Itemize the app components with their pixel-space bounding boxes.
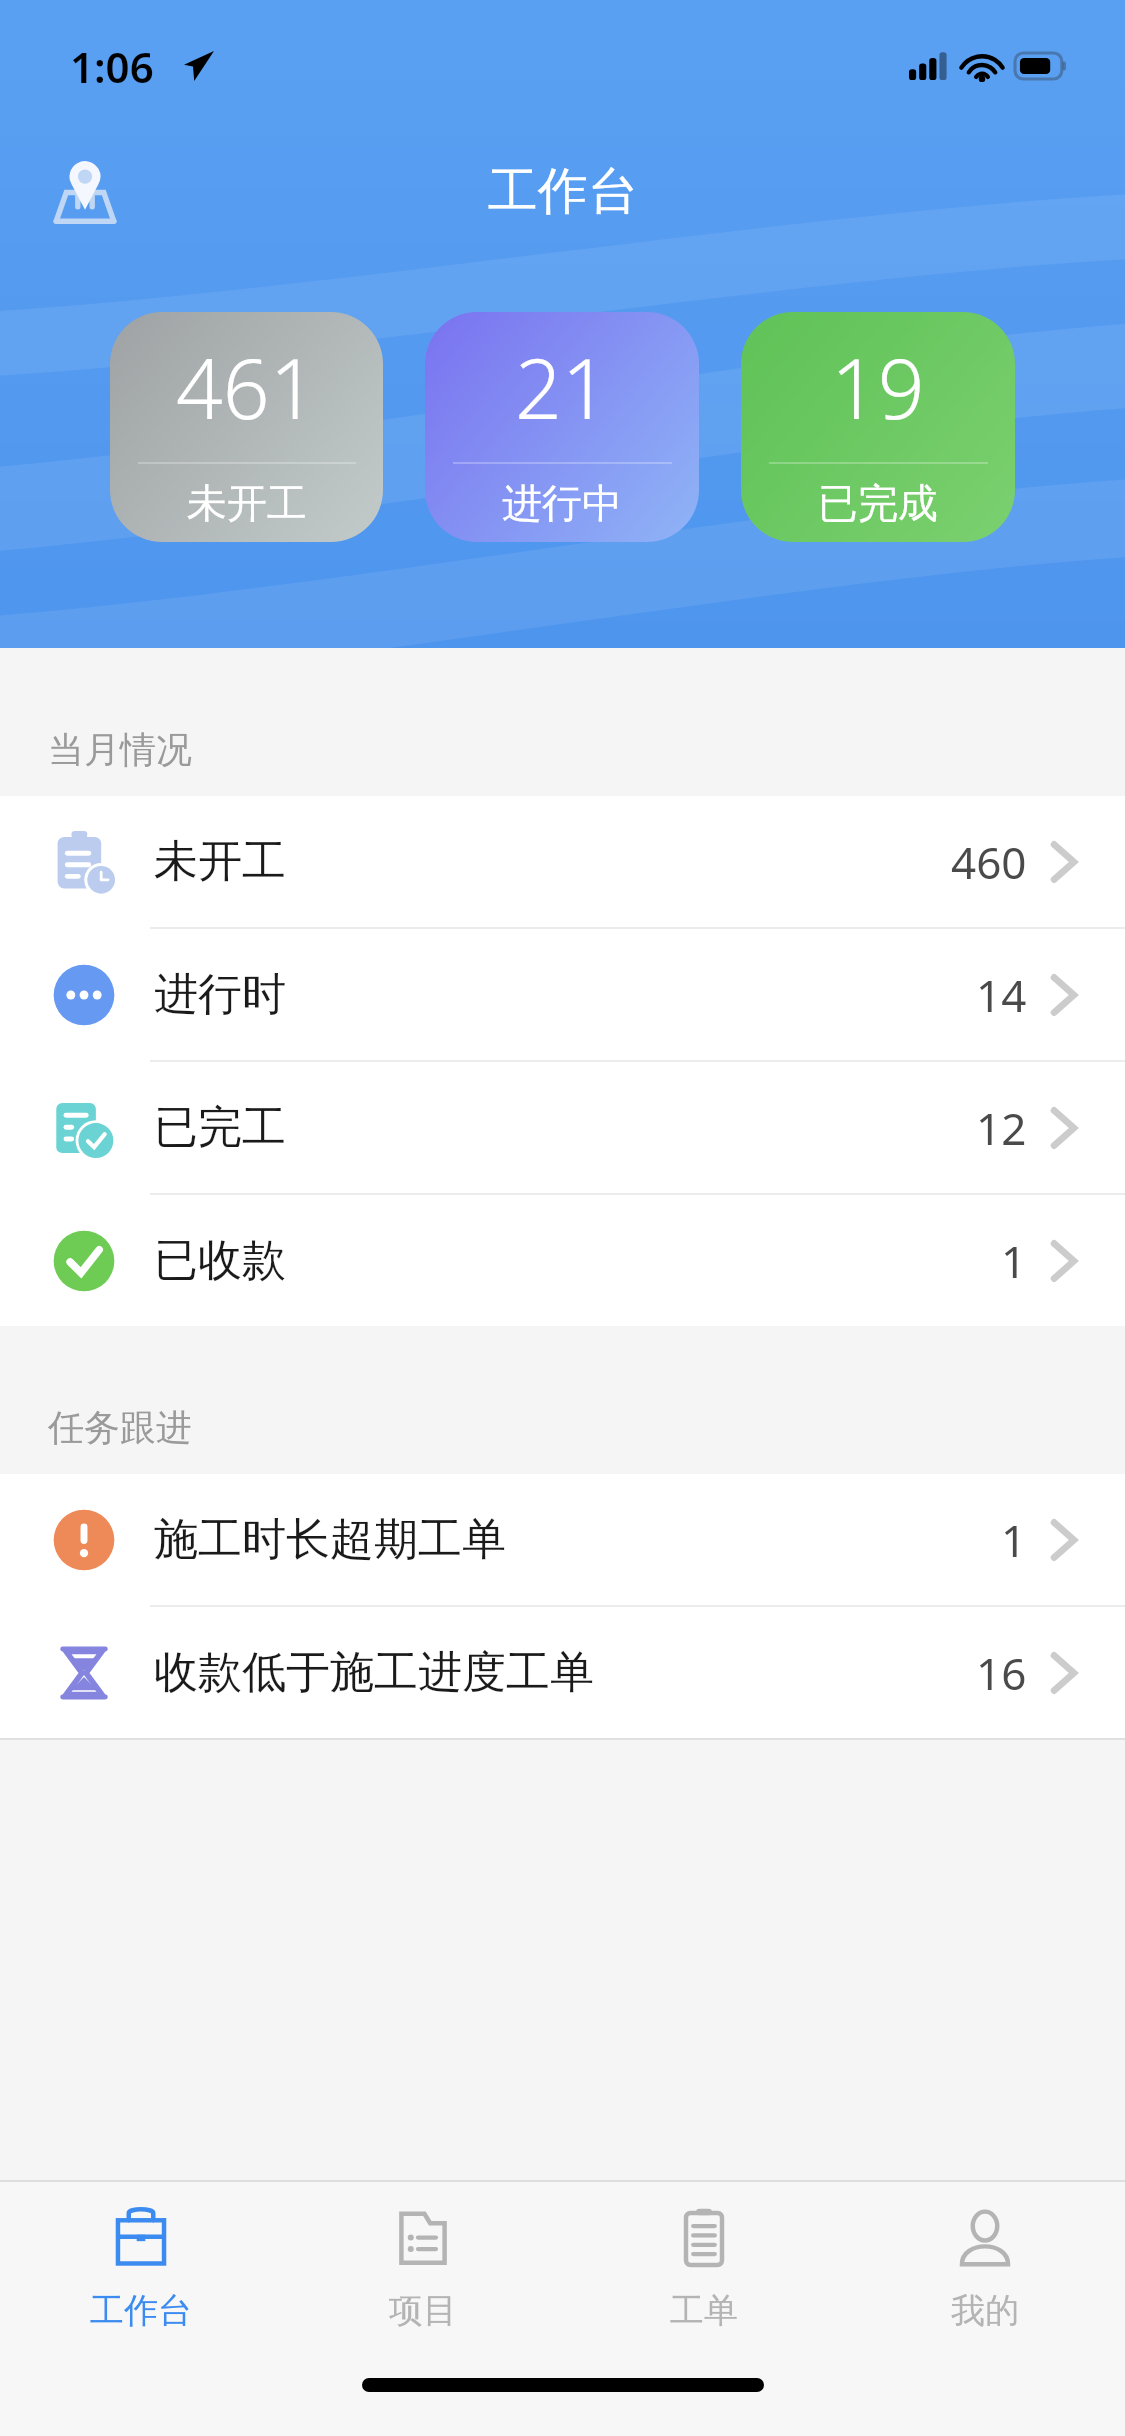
staticText: 当月情况 [48, 727, 192, 772]
staticText: 1:06 [70, 38, 154, 95]
staticText: 已完成 [818, 478, 938, 528]
button[interactable]: 已收款 [0, 1195, 1125, 1326]
staticText: 施工时长超期工单 [154, 1512, 506, 1567]
button[interactable]: 工作台 [0, 2182, 282, 2352]
staticText: 未开工 [187, 478, 307, 528]
staticText: 未开工 [154, 834, 286, 889]
button[interactable]: 19 [741, 312, 1015, 542]
staticText: 已完工 [154, 1100, 286, 1155]
button[interactable]: 未开工 [0, 796, 1125, 927]
staticText: 工作台 [488, 160, 638, 223]
button[interactable]: 施工时长超期工单 [0, 1474, 1125, 1605]
staticText: 进行时 [154, 967, 286, 1022]
button[interactable]: 我的 [844, 2182, 1125, 2352]
staticText: 461 [176, 331, 317, 443]
staticText: 19 [831, 331, 925, 443]
button[interactable]: 收款低于施工进度工单 [0, 1607, 1125, 1738]
staticText: 已收款 [154, 1233, 286, 1288]
staticText: 任务跟进 [48, 1405, 192, 1450]
staticText: 项目 [389, 2289, 457, 2332]
button[interactable]: 461 [110, 312, 383, 542]
button[interactable]: 工单 [563, 2182, 844, 2352]
button[interactable]: Map location [42, 148, 128, 234]
staticText: 12 [976, 1098, 1027, 1158]
staticText: 我的 [951, 2289, 1019, 2332]
staticText: 收款低于施工进度工单 [154, 1645, 594, 1700]
staticText: 14 [976, 965, 1027, 1025]
button[interactable]: 已完工 [0, 1062, 1125, 1193]
staticText: 工作台 [90, 2289, 192, 2332]
button[interactable]: 进行时 [0, 929, 1125, 1060]
button[interactable]: 21 [425, 312, 699, 542]
staticText: 460 [951, 832, 1027, 892]
staticText: 1 [1001, 1231, 1027, 1291]
staticText: 工单 [670, 2289, 738, 2332]
staticText: 16 [976, 1643, 1027, 1703]
button[interactable]: 项目 [282, 2182, 563, 2352]
staticText: 进行中 [502, 478, 622, 528]
staticText: 1 [1001, 1510, 1027, 1570]
staticText: 21 [515, 331, 609, 443]
